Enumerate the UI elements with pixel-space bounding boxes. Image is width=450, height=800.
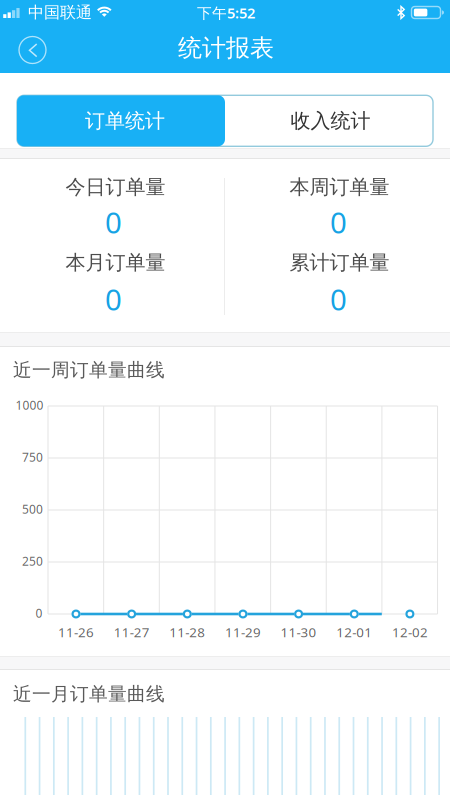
staticText: 0 xyxy=(105,279,122,318)
staticText: 今日订单量 xyxy=(65,175,165,199)
staticText: 累计订单量 xyxy=(289,250,389,275)
staticText: 500 xyxy=(22,501,43,517)
staticText: 0 xyxy=(330,202,347,241)
staticText: 本月订单量 xyxy=(65,250,165,275)
staticText: 750 xyxy=(22,449,43,465)
staticText: 近一周订单量曲线 xyxy=(13,358,165,381)
staticText: 1000 xyxy=(15,397,43,413)
staticText: 收入统计 xyxy=(290,108,370,133)
staticText: 11-27 xyxy=(114,623,150,641)
staticText: 11-26 xyxy=(58,623,94,641)
staticText: 统计报表 xyxy=(178,33,274,63)
staticText: 11-29 xyxy=(225,623,261,641)
staticText: 0 xyxy=(105,202,122,241)
staticText: 0 xyxy=(35,605,42,621)
staticText: 近一月订单量曲线 xyxy=(13,682,165,705)
staticText: 11-28 xyxy=(169,623,205,641)
staticText: 12-02 xyxy=(392,623,428,641)
staticText: 250 xyxy=(22,553,43,569)
staticText: 下午5:52 xyxy=(197,3,255,22)
staticText: 订单统计 xyxy=(85,108,165,133)
staticText: 11-30 xyxy=(281,623,317,641)
staticText: 12-01 xyxy=(336,623,372,641)
staticText: 本周订单量 xyxy=(289,175,389,199)
staticText: 0 xyxy=(330,279,347,318)
staticText: 中国联通 xyxy=(28,3,92,22)
